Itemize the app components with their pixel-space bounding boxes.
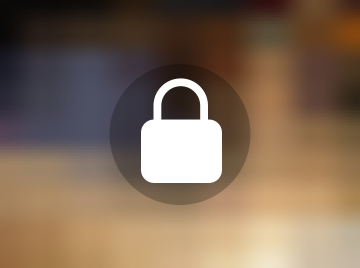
button[interactable]: Locked content: [0, 0, 360, 268]
